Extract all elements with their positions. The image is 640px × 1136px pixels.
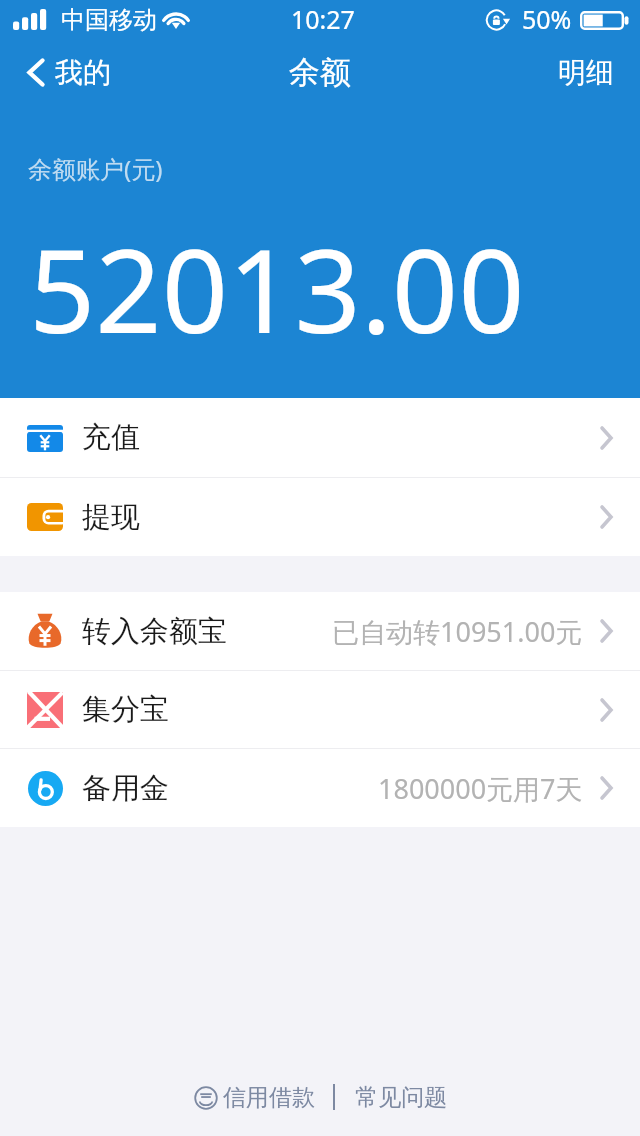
staticText: 余额 xyxy=(289,53,351,92)
staticText: 中国移动 xyxy=(61,5,157,35)
staticText: 50% xyxy=(522,2,572,36)
button[interactable]: 集分宝 xyxy=(0,671,640,748)
staticText: 52013.00 xyxy=(29,209,525,367)
staticText: 10:27 xyxy=(291,2,355,36)
staticText: 提现 xyxy=(82,499,140,536)
button[interactable]: 我的 xyxy=(21,49,117,96)
staticText: 充值 xyxy=(82,419,140,456)
button[interactable]: 信用借款 xyxy=(192,1077,317,1118)
staticText: 我的 xyxy=(55,55,111,90)
staticText: 已自动转10951.00元 xyxy=(332,613,583,650)
button[interactable]: 备用金 xyxy=(0,749,640,827)
staticText: 转入余额宝 xyxy=(82,613,227,650)
staticText: 余额账户(元) xyxy=(28,152,163,185)
button[interactable]: 明细 xyxy=(532,47,640,98)
staticText: 备用金 xyxy=(82,770,169,807)
staticText: 信用借款 xyxy=(223,1083,315,1112)
button[interactable]: 常见问题 xyxy=(353,1077,449,1118)
button[interactable]: 充值 xyxy=(0,398,640,477)
button[interactable]: 提现 xyxy=(0,478,640,556)
staticText: 集分宝 xyxy=(82,691,169,728)
button[interactable]: 转入余额宝 xyxy=(0,592,640,670)
staticText: 1800000元用7天 xyxy=(378,770,583,807)
